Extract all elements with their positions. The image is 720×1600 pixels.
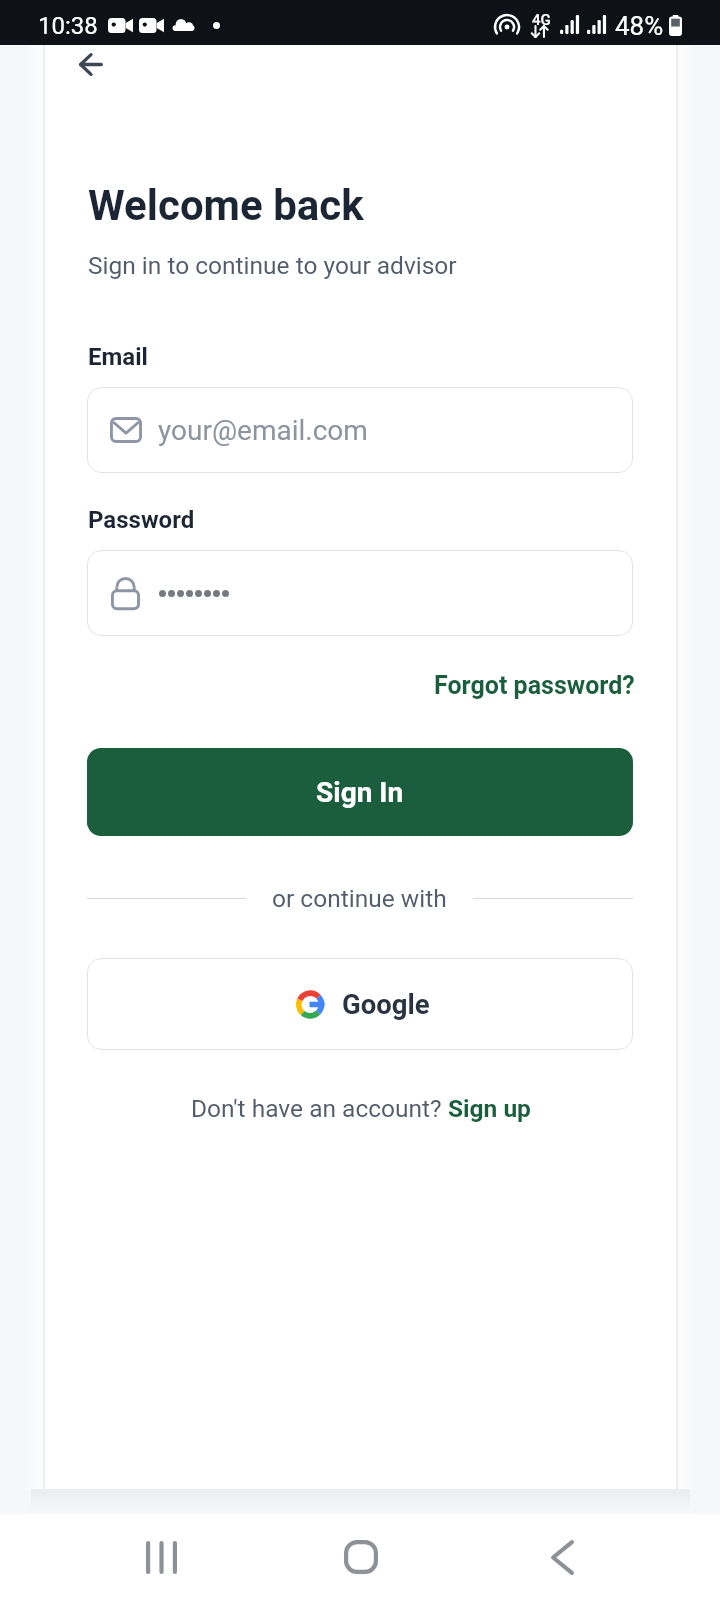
staticText: your@email.com	[158, 414, 368, 447]
button[interactable]: Forgot password?	[434, 671, 635, 700]
staticText: Sign up	[448, 1094, 531, 1123]
staticText: or continue with	[272, 884, 447, 913]
staticText: Forgot password?	[434, 671, 635, 700]
button[interactable]: Home	[316, 1522, 406, 1592]
button[interactable]: Back	[62, 36, 119, 93]
staticText: Don't have an account?	[191, 1094, 448, 1123]
staticText: Sign in to continue to your advisor	[88, 251, 457, 280]
staticText: Sign In	[316, 776, 404, 809]
button[interactable]: Sign In	[87, 748, 633, 836]
staticText: 10:38	[38, 12, 98, 40]
staticText: 4G	[532, 11, 551, 29]
button[interactable]: your@email.com	[87, 387, 633, 473]
staticText: Email	[88, 343, 148, 371]
staticText: Welcome back	[88, 181, 364, 230]
button[interactable]: Sign up	[448, 1094, 531, 1123]
staticText: Google	[342, 988, 430, 1020]
button[interactable]: Back	[517, 1522, 607, 1592]
staticText: Password	[88, 506, 195, 534]
staticText: 48%	[615, 11, 664, 41]
button[interactable]: Recent apps	[116, 1522, 206, 1592]
button[interactable]	[87, 550, 633, 636]
button[interactable]: Google	[87, 958, 633, 1050]
